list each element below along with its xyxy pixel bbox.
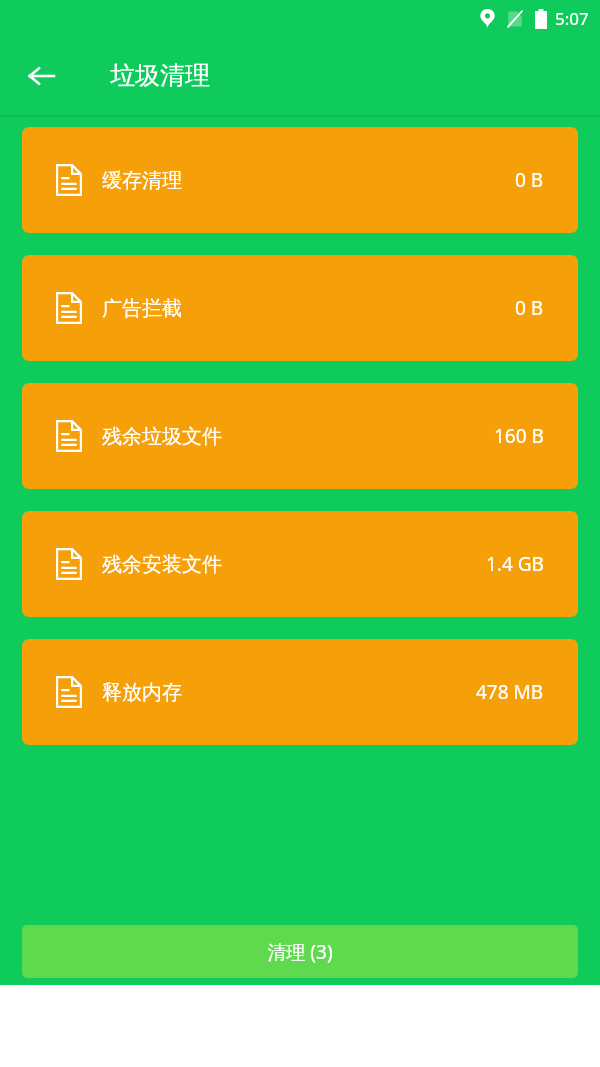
staticText: 广告拦截 — [102, 296, 182, 321]
staticText: 5:07 — [555, 7, 589, 30]
button[interactable]: 清理 (3) — [22, 925, 578, 978]
button[interactable]: 释放内存 — [22, 639, 578, 745]
staticText: 残余安装文件 — [102, 552, 222, 577]
staticText: 160 B — [494, 423, 544, 449]
staticText: 清理 (3) — [267, 939, 333, 965]
button[interactable]: Back — [18, 53, 64, 99]
staticText: 478 MB — [476, 679, 544, 705]
staticText: 释放内存 — [102, 680, 182, 705]
staticText: 垃圾清理 — [110, 60, 210, 91]
button[interactable]: 残余安装文件 — [22, 511, 578, 617]
staticText: 残余垃圾文件 — [102, 424, 222, 449]
button[interactable]: 残余垃圾文件 — [22, 383, 578, 489]
button[interactable]: 广告拦截 — [22, 255, 578, 361]
staticText: 缓存清理 — [102, 168, 182, 193]
staticText: 0 B — [515, 295, 544, 321]
button[interactable]: 缓存清理 — [22, 127, 578, 233]
staticText: 0 B — [515, 167, 544, 193]
staticText: 1.4 GB — [486, 551, 544, 577]
